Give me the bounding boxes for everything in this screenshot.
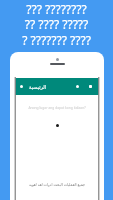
staticText: جميع العمليات البحث ادوات لغة لغوية [15,182,99,187]
button[interactable]: More options [86,82,95,91]
button[interactable]: Search [73,82,82,91]
staticText: ??? ???????? ?? ???? ????? ? ??????? ???… [0,1,113,49]
staticText: الرئيسية [29,84,47,90]
staticText: Anong lugar ang dapat kong italaan? [15,105,99,109]
button[interactable]: Navigate up [17,82,26,91]
